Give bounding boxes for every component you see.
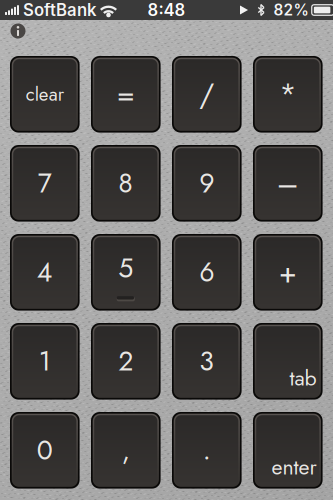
button[interactable]: 8 (91, 145, 161, 222)
button[interactable]: + (253, 234, 323, 311)
staticText: enter (272, 452, 317, 483)
button[interactable]: Info (5, 20, 31, 42)
button[interactable]: , (91, 412, 161, 489)
button[interactable]: 0 (10, 412, 80, 489)
staticText: 6 (199, 253, 214, 291)
staticText: 4 (37, 253, 53, 291)
staticText: = (117, 73, 135, 115)
staticText: 0 (37, 431, 53, 469)
staticText: 9 (199, 164, 214, 202)
staticText: tab (290, 363, 317, 394)
staticText: . (203, 431, 211, 469)
button[interactable]: 9 (172, 145, 242, 222)
staticText: * (279, 73, 296, 115)
staticText: – (277, 162, 299, 204)
staticText: 2 (118, 342, 133, 380)
button[interactable]: 6 (172, 234, 242, 311)
button[interactable]: clear (10, 56, 80, 133)
button[interactable]: 1 (10, 323, 80, 400)
button[interactable]: enter (253, 412, 323, 489)
staticText: 5 (118, 249, 133, 287)
staticText: SoftBank (23, 0, 96, 20)
staticText: 82% (274, 1, 309, 19)
button[interactable]: . (172, 412, 242, 489)
staticText: clear (26, 81, 64, 108)
staticText: 7 (38, 164, 52, 202)
button[interactable]: 7 (10, 145, 80, 222)
button[interactable]: – (253, 145, 323, 222)
button[interactable]: / (172, 56, 242, 133)
button[interactable]: tab (253, 323, 323, 400)
button[interactable]: 3 (172, 323, 242, 400)
button[interactable]: 5 (91, 234, 161, 311)
button[interactable]: * (253, 56, 323, 133)
staticText: , (122, 431, 130, 469)
staticText: 3 (199, 342, 214, 380)
staticText: 8 (118, 164, 133, 202)
button[interactable]: 4 (10, 234, 80, 311)
staticText: 1 (39, 342, 51, 380)
staticText: / (199, 73, 214, 115)
staticText: 8:48 (147, 0, 185, 20)
button[interactable]: 2 (91, 323, 161, 400)
button[interactable]: = (91, 56, 161, 133)
staticText: + (279, 251, 297, 293)
